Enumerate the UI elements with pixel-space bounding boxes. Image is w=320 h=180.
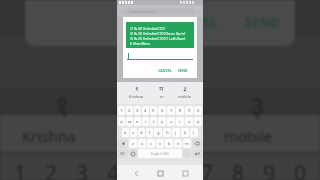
- button[interactable]: Shift: [118, 139, 128, 148]
- staticText: 0: [294, 159, 307, 180]
- staticText: q: [120, 119, 123, 125]
- button[interactable]: a: [122, 128, 129, 137]
- staticText: 3: [136, 108, 139, 114]
- staticText: n: [177, 141, 180, 147]
- button[interactable]: SEND: [176, 67, 189, 74]
- staticText: 0: [197, 108, 200, 114]
- button[interactable]: 5: [150, 106, 157, 115]
- staticText: mobile: [224, 126, 273, 146]
- staticText: 4: [107, 159, 120, 180]
- staticText: SEND: [245, 14, 281, 30]
- button[interactable]: English (US): [138, 149, 182, 158]
- button[interactable]: i: [176, 117, 184, 126]
- button[interactable]: ३: [176, 82, 193, 99]
- button[interactable]: CANCEL: [158, 67, 173, 74]
- staticText: English (US): [151, 152, 169, 156]
- button[interactable]: 1: [118, 106, 125, 115]
- staticText: ३: [250, 86, 265, 124]
- staticText: i: [179, 119, 181, 125]
- button[interactable]: j: [172, 128, 180, 137]
- staticText: mobile: [178, 94, 191, 99]
- button[interactable]: 7: [167, 106, 175, 115]
- button[interactable]: Backspace: [192, 139, 202, 148]
- button[interactable]: w: [126, 117, 133, 126]
- button[interactable]: x: [138, 139, 146, 148]
- button[interactable]: l: [190, 128, 198, 137]
- button[interactable]: 8: [176, 106, 184, 115]
- staticText: p: [197, 119, 200, 125]
- staticText: h: [166, 130, 169, 136]
- button[interactable]: !#1: [118, 149, 128, 158]
- button[interactable]: Emoji: [129, 149, 137, 158]
- button[interactable]: s: [130, 128, 137, 137]
- staticText: 9: [188, 108, 191, 114]
- staticText: d: [140, 130, 143, 136]
- staticText: r: [145, 119, 147, 125]
- button[interactable]: n: [174, 139, 182, 148]
- staticText: l: [193, 130, 195, 136]
- staticText: 4: [144, 108, 147, 114]
- staticText: v: [159, 141, 162, 147]
- button[interactable]: Home: [154, 167, 166, 179]
- button[interactable]: v: [156, 139, 164, 148]
- staticText: 7: [170, 108, 173, 114]
- staticText: a: [124, 130, 127, 136]
- staticText: o: [188, 119, 191, 125]
- staticText: s: [132, 130, 135, 136]
- staticText: 3: [76, 159, 89, 180]
- button[interactable]: 9: [185, 106, 193, 115]
- staticText: f: [149, 130, 151, 136]
- staticText: १: [55, 86, 70, 124]
- staticText: e: [136, 119, 139, 125]
- button[interactable]: b: [165, 139, 173, 148]
- button[interactable]: १: [127, 82, 146, 99]
- button[interactable]: o: [185, 117, 193, 126]
- staticText: 1) Rs 30 Unlimited (1D) 2) Rs 20 Unlimit…: [130, 27, 186, 46]
- button[interactable]: m: [183, 139, 191, 148]
- staticText: 2: [128, 108, 131, 114]
- button[interactable]: u: [167, 117, 175, 126]
- staticText: Krishna: [129, 94, 144, 99]
- button[interactable]: 3: [134, 106, 141, 115]
- button[interactable]: 4: [142, 106, 149, 115]
- button[interactable]: z: [129, 139, 137, 148]
- staticText: z: [132, 141, 134, 147]
- button[interactable]: Recents: [179, 167, 191, 179]
- staticText: 8: [232, 159, 245, 180]
- button[interactable]: y: [158, 117, 166, 126]
- staticText: ३: [183, 84, 187, 94]
- staticText: b: [168, 141, 171, 147]
- staticText: w: [128, 119, 132, 125]
- staticText: 6: [161, 108, 164, 114]
- staticText: SEND: [178, 68, 188, 73]
- button[interactable]: h: [163, 128, 171, 137]
- button[interactable]: r: [142, 117, 149, 126]
- staticText: Search contacts: [129, 9, 156, 14]
- staticText: 2: [45, 159, 58, 180]
- button[interactable]: d: [138, 128, 145, 137]
- button[interactable]: Search contacts: [123, 8, 195, 15]
- button[interactable]: e: [134, 117, 141, 126]
- button[interactable]: 0: [194, 106, 202, 115]
- button[interactable]: 6: [158, 106, 166, 115]
- staticText: y: [161, 119, 164, 125]
- staticText: k: [184, 130, 187, 136]
- button[interactable]: c: [147, 139, 155, 148]
- button[interactable]: q: [118, 117, 125, 126]
- staticText: c: [150, 141, 153, 147]
- button[interactable]: g: [154, 128, 162, 137]
- button[interactable]: 2: [126, 106, 133, 115]
- button[interactable]: t: [150, 117, 157, 126]
- button[interactable]: म: [157, 82, 166, 99]
- button[interactable]: Enter: [192, 149, 202, 158]
- button[interactable]: k: [181, 128, 189, 137]
- button[interactable]: p: [194, 117, 202, 126]
- button[interactable]: Back: [130, 167, 142, 179]
- staticText: m: [185, 141, 189, 147]
- button[interactable]: f: [146, 128, 153, 137]
- staticText: म: [159, 84, 164, 94]
- staticText: m: [160, 94, 164, 99]
